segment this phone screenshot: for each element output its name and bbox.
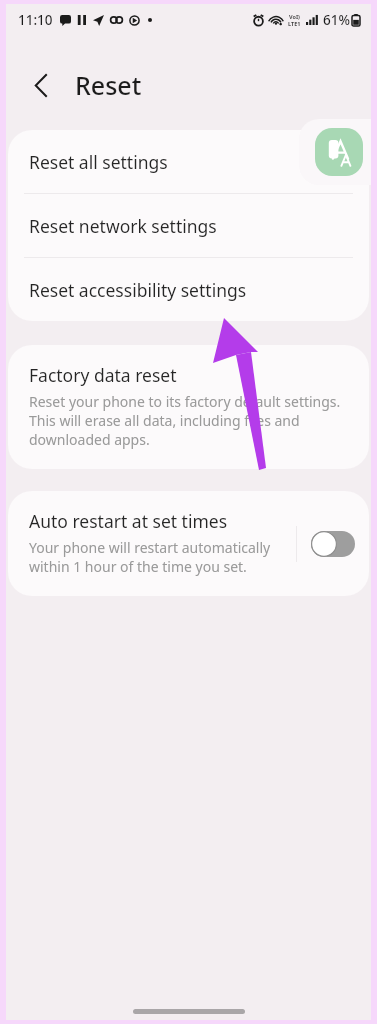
button[interactable]: Reset all settings xyxy=(8,130,369,193)
staticText: Auto restart at set times xyxy=(29,509,228,533)
button[interactable]: Auto restart at set times toggle, off xyxy=(311,531,355,557)
staticText: 11:10 xyxy=(18,11,53,29)
staticText: 61% xyxy=(323,11,350,29)
button[interactable]: Reset network settings xyxy=(8,194,369,257)
button[interactable]: Factory data reset xyxy=(8,345,369,469)
staticText: Reset xyxy=(75,68,142,102)
button[interactable]: Reset accessibility settings xyxy=(8,258,369,321)
button[interactable]: Accessibility shortcut xyxy=(299,119,371,185)
staticText: Reset accessibility settings xyxy=(29,278,247,302)
staticText: Your phone will restart automatically wi… xyxy=(29,538,286,576)
staticText: VoI) xyxy=(289,13,300,20)
staticText: Factory data reset xyxy=(29,363,177,387)
staticText: Reset network settings xyxy=(29,214,217,238)
staticText: Reset your phone to its factory default … xyxy=(29,392,349,449)
button[interactable]: Back xyxy=(24,68,58,102)
staticText: Reset all settings xyxy=(29,150,168,174)
staticText: LTE1 xyxy=(288,20,301,27)
button[interactable]: Auto restart at set times xyxy=(8,491,296,596)
